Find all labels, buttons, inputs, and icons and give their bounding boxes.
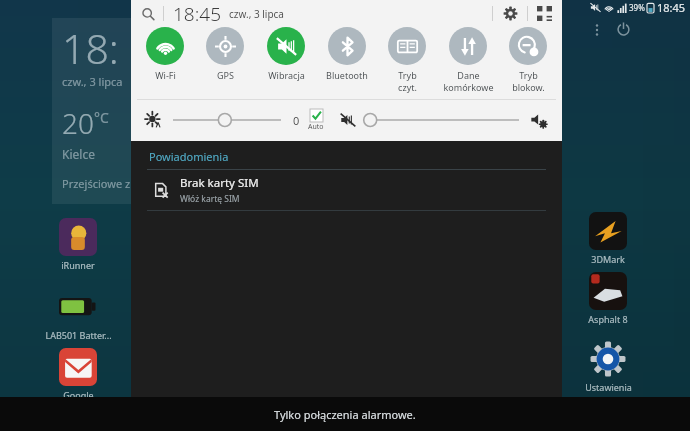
staticText: czw., 3 lipca (62, 74, 123, 89)
button[interactable]: Bluetooth (318, 27, 376, 81)
staticText: 39% (629, 2, 645, 13)
staticText: 18: (62, 20, 119, 76)
button[interactable]: Asphalt 8 (571, 272, 645, 325)
button[interactable]: Sound settings (531, 112, 548, 129)
staticText: Google (63, 389, 94, 401)
staticText: Asphalt 8 (588, 313, 628, 325)
staticText: Ustawienia (585, 381, 632, 393)
button[interactable]: Google (43, 348, 113, 401)
button[interactable]: Settings (503, 6, 518, 21)
staticText: czw., 3 lipca (229, 7, 284, 21)
staticText: 18:45 (173, 1, 222, 27)
staticText: czyt. (398, 81, 417, 93)
staticText: 18:45 (657, 0, 686, 15)
staticText: Powiadomienia (149, 149, 229, 164)
staticText: Brak karty SIM (180, 175, 259, 191)
button[interactable]: LAB501 Batter... (35, 288, 121, 341)
button[interactable]: Brak karty SIM (131, 170, 562, 210)
staticText: GPS (217, 69, 234, 81)
button[interactable]: Dane (439, 27, 497, 93)
staticText: °C (94, 108, 109, 127)
button[interactable]: Tryb (499, 27, 557, 93)
staticText: Auto (308, 122, 324, 132)
button[interactable]: Wi-Fi (136, 27, 194, 81)
staticText: Włóż kartę SIM (180, 193, 240, 205)
staticText: Kielce (62, 146, 95, 162)
staticText: Bluetooth (326, 69, 368, 81)
button[interactable]: Auto (308, 109, 324, 132)
staticText: blokow. (512, 81, 545, 93)
staticText: 3DMark (591, 253, 625, 265)
staticText: 0 (293, 113, 300, 128)
staticText: Tryb (519, 69, 538, 81)
button[interactable]: iRunner (43, 218, 113, 271)
button[interactable]: GPS (196, 27, 254, 81)
button[interactable]: Auto brightness (145, 112, 161, 128)
staticText: Tylko połączenia alarmowe. (274, 407, 416, 422)
button[interactable]: 3DMark (573, 212, 643, 265)
staticText: komórkowe (443, 81, 494, 93)
staticText: Przejściowe z (62, 176, 131, 191)
button[interactable]: Tryb (378, 27, 436, 93)
staticText: 20 (62, 104, 94, 142)
staticText: Dane (457, 69, 480, 81)
staticText: LAB501 Batter... (45, 329, 112, 341)
button[interactable]: Search (141, 7, 155, 21)
button[interactable] (173, 111, 281, 129)
button[interactable]: Wibracja (257, 27, 315, 81)
staticText: Wibracja (268, 69, 305, 81)
button[interactable] (364, 111, 519, 129)
button[interactable]: Power (616, 22, 631, 37)
staticText: Wi-Fi (155, 69, 176, 81)
staticText: iRunner (61, 259, 95, 271)
button[interactable]: Apps (653, 396, 681, 424)
button[interactable]: Ustawienia (569, 340, 647, 393)
button[interactable]: More options (590, 23, 604, 37)
button[interactable]: Edit quick settings (537, 6, 552, 21)
staticText: Tryb (398, 69, 417, 81)
